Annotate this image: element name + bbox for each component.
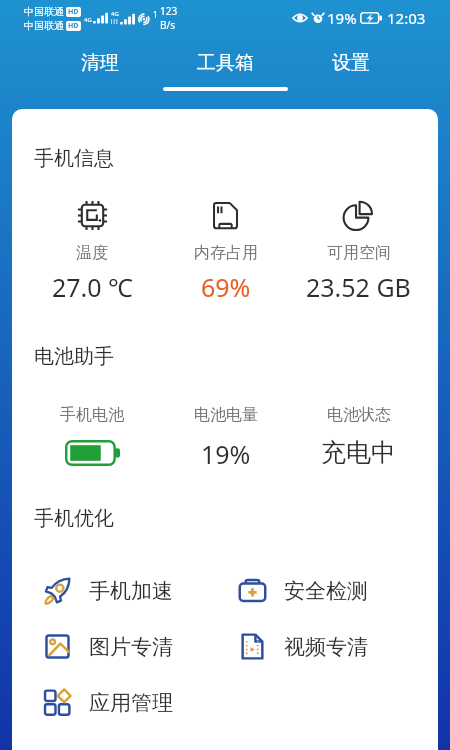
- staticText: 电池状态: [327, 405, 391, 425]
- other: 安全检测: [238, 576, 267, 605]
- staticText: 中国联通: [24, 5, 64, 18]
- other: 图片专清: [43, 632, 72, 661]
- staticText: 工具箱: [197, 51, 254, 75]
- staticText: 应用管理: [89, 690, 173, 716]
- staticText: 4G: [84, 16, 92, 24]
- staticText: 视频专清: [284, 634, 368, 660]
- staticText: 设置: [332, 51, 370, 75]
- other: 视频专清: [238, 632, 267, 661]
- button[interactable]: 视频专清: [207, 622, 438, 671]
- button[interactable]: 安全检测: [207, 566, 438, 615]
- staticText: 充电中: [321, 437, 396, 468]
- staticText: 可用空间: [327, 243, 391, 263]
- staticText: HD: [68, 7, 79, 17]
- staticText: 手机优化: [34, 506, 114, 531]
- other: 手机加速: [43, 576, 72, 605]
- other: 应用管理: [43, 688, 72, 717]
- staticText: B/s: [160, 18, 176, 32]
- staticText: 27.0 ℃: [52, 270, 133, 304]
- button[interactable]: 图片专清: [12, 622, 207, 671]
- button[interactable]: 手机加速: [12, 566, 207, 615]
- staticText: 安全检测: [284, 578, 368, 604]
- button[interactable]: 设置: [288, 36, 413, 109]
- staticText: 69%: [201, 270, 251, 304]
- staticText: 温度: [76, 243, 108, 263]
- staticText: 电池助手: [34, 344, 114, 369]
- staticText: 123: [160, 4, 178, 18]
- staticText: 19%: [327, 8, 357, 28]
- button[interactable]: 工具箱: [163, 36, 288, 109]
- staticText: HD: [68, 21, 79, 31]
- staticText: 手机加速: [89, 578, 173, 604]
- staticText: 图片专清: [89, 634, 173, 660]
- staticText: |||: [110, 18, 119, 25]
- button[interactable]: 应用管理: [12, 678, 207, 727]
- staticText: 清理: [81, 51, 119, 75]
- staticText: 4G: [111, 10, 119, 18]
- staticText: 19%: [201, 437, 251, 471]
- button[interactable]: 清理: [37, 36, 163, 109]
- staticText: 内存占用: [194, 243, 258, 263]
- staticText: 中国联通: [24, 19, 64, 32]
- staticText: 电池电量: [194, 405, 258, 425]
- staticText: 23.52 GB: [306, 270, 411, 304]
- staticText: 1: [153, 9, 158, 20]
- staticText: 手机电池: [60, 405, 124, 425]
- staticText: 12:03: [387, 8, 426, 28]
- staticText: 手机信息: [34, 146, 114, 171]
